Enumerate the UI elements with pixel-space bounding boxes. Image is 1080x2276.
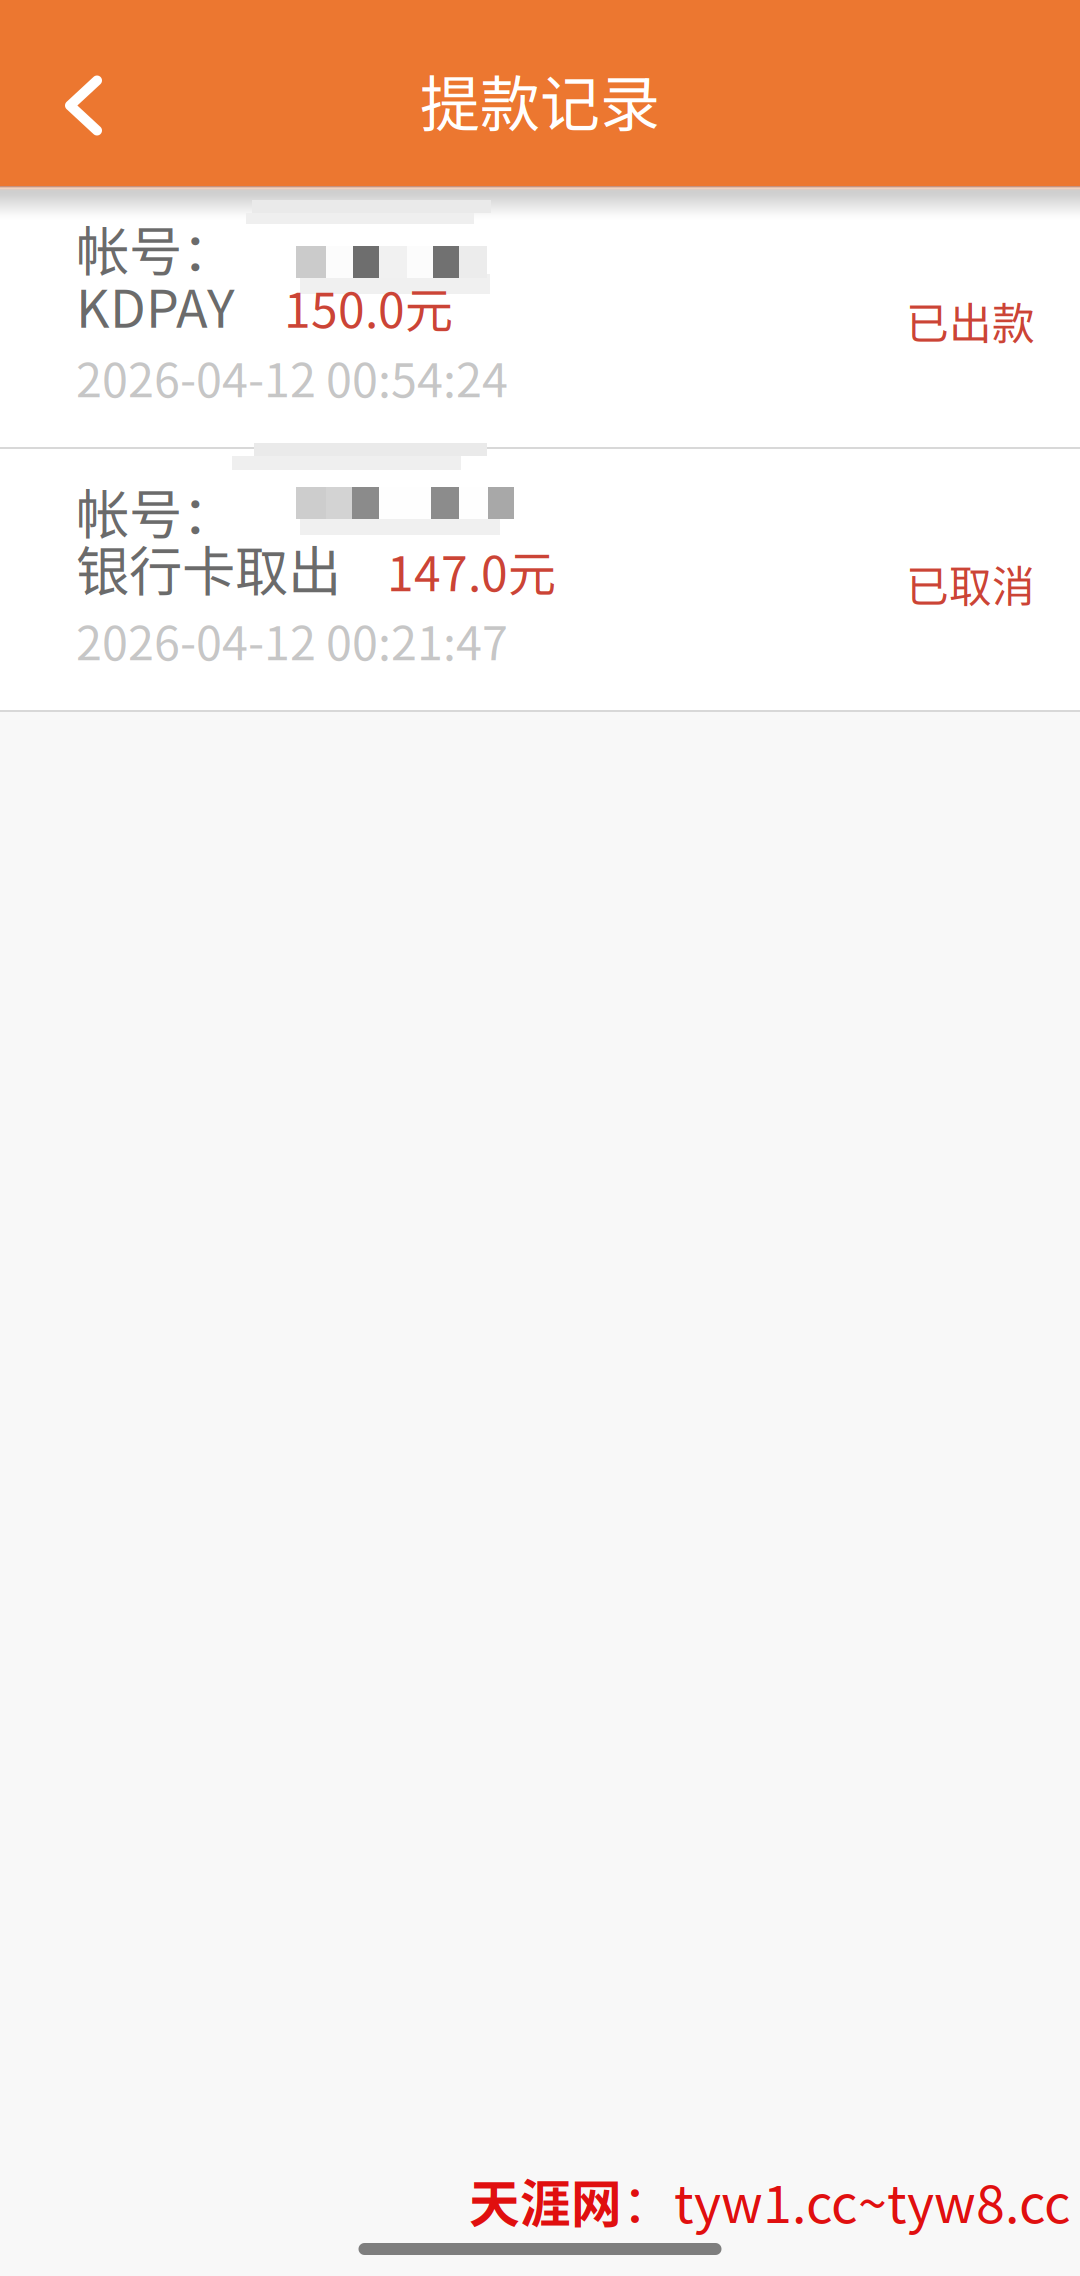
button[interactable]: 帐号： [0,449,1080,710]
staticText: 帐号： [76,472,235,550]
staticText: 提款记录 [420,57,660,143]
staticText: 2026-04-12 00:21:47 [76,606,508,674]
staticText: 已出款 [906,290,1035,352]
staticText: 帐号： [76,209,235,287]
staticText: 150.0元 [284,272,453,341]
staticText: 已取消 [906,553,1035,615]
staticText: 天涯网：tyw1.cc~tyw8.cc [469,2164,1071,2237]
button[interactable]: 帐号： [0,186,1080,447]
button[interactable]: Back [0,27,144,158]
staticText: 银行卡取出 [76,529,341,607]
staticText: KDPAY [76,267,235,343]
staticText: 147.0元 [387,536,556,605]
staticText: 2026-04-12 00:54:24 [76,343,508,411]
